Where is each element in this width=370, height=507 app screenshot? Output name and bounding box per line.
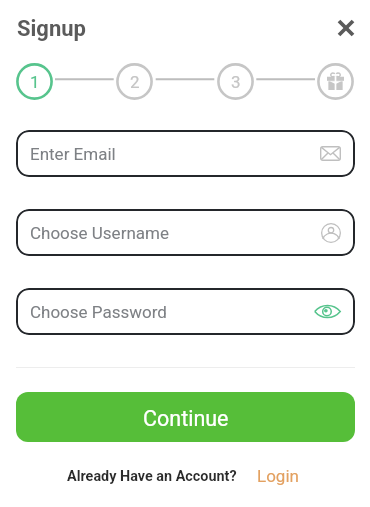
button[interactable]: Login (257, 466, 299, 486)
button[interactable]: Step 3 (217, 63, 254, 100)
button[interactable]: Step 2 (116, 63, 153, 100)
staticText: Choose Username (30, 223, 169, 243)
button[interactable]: Step 1 (16, 63, 53, 100)
staticText: 3 (231, 72, 241, 92)
staticText: 2 (130, 72, 140, 92)
button[interactable]: Reward step (317, 63, 354, 100)
button[interactable]: Choose Password (16, 288, 355, 335)
button[interactable]: Close (332, 14, 360, 42)
staticText: Choose Password (30, 302, 167, 322)
staticText: Login (257, 466, 299, 486)
button[interactable]: Enter Email (16, 130, 355, 177)
staticText: Enter Email (30, 144, 116, 164)
staticText: Already Have an Account? (67, 468, 237, 485)
button[interactable]: Choose Username (16, 209, 355, 256)
staticText: 1 (30, 72, 40, 92)
staticText: Continue (143, 406, 229, 431)
staticText: Signup (17, 16, 86, 42)
button[interactable]: Continue (16, 392, 355, 442)
